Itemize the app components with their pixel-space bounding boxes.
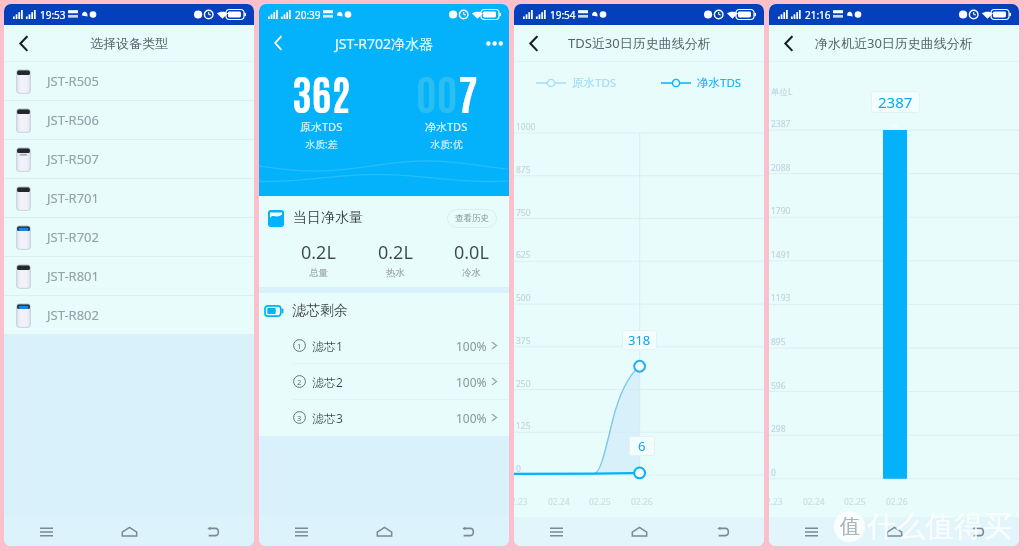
button[interactable]: 1 (259, 328, 509, 363)
staticText: 596 (771, 380, 786, 392)
button[interactable]: Home (88, 517, 171, 546)
staticText: 500 (516, 292, 531, 304)
button[interactable]: Recent apps (4, 517, 88, 546)
staticText: 125 (516, 420, 531, 432)
staticText: 02.24 (548, 496, 570, 508)
staticText: 净水机近30日历史曲线分析 (815, 34, 973, 52)
staticText: 02.23 (769, 496, 783, 508)
staticText: 318 (628, 331, 651, 349)
staticText: 250 (516, 378, 531, 390)
staticText: 625 (516, 249, 531, 261)
staticText: 1193 (771, 292, 791, 304)
staticText: 2 (297, 377, 302, 387)
staticText: 100% (456, 410, 487, 426)
button[interactable]: Home (343, 517, 426, 546)
staticText: 1790 (771, 205, 791, 217)
staticText: 原水TDS (300, 119, 343, 134)
staticText: 7 (458, 64, 478, 118)
staticText: 水质:差 (305, 137, 338, 151)
button[interactable]: 3 (259, 400, 509, 435)
button[interactable]: Back (426, 517, 509, 546)
button[interactable]: Back (681, 517, 764, 546)
staticText: 0 (771, 467, 776, 479)
button[interactable]: 查看历史 (447, 209, 497, 228)
staticText: 总量 (309, 267, 328, 279)
staticText: 100% (456, 374, 487, 390)
button[interactable]: JST-R802 (4, 296, 254, 334)
button[interactable]: Home (598, 517, 681, 546)
staticText: 热水 (386, 267, 405, 279)
button[interactable]: JST-R701 (4, 179, 254, 217)
staticText: 0.2L (378, 240, 413, 265)
button[interactable]: Back (769, 25, 807, 61)
staticText: 20:39 (295, 8, 321, 22)
staticText: 1491 (771, 249, 791, 261)
staticText: 298 (771, 423, 786, 435)
button[interactable]: JST-R507 (4, 140, 254, 178)
staticText: 滤芯3 (312, 410, 343, 426)
staticText: JST-R702净水器 (335, 34, 433, 53)
button[interactable]: Home (853, 517, 936, 546)
staticText: 选择设备类型 (90, 35, 168, 51)
button[interactable]: JST-R505 (4, 62, 254, 100)
button[interactable]: Back (259, 25, 297, 61)
staticText: 02.23 (514, 496, 528, 508)
staticText: JST-R702 (47, 228, 99, 246)
staticText: 2387 (878, 92, 913, 112)
staticText: 362 (292, 64, 351, 118)
staticText: 0.2L (301, 240, 336, 265)
staticText: JST-R801 (47, 267, 99, 285)
staticText: 02.26 (631, 496, 653, 508)
button[interactable]: Recent apps (514, 517, 598, 546)
button[interactable]: Back (936, 517, 1019, 546)
staticText: 21:16 (805, 8, 831, 22)
button[interactable]: Back (4, 25, 42, 61)
staticText: 02.25 (589, 496, 611, 508)
staticText: 查看历史 (455, 213, 489, 224)
staticText: 什么值得买 (867, 508, 1012, 545)
staticText: 02.26 (886, 496, 908, 508)
staticText: 滤芯1 (312, 338, 343, 354)
staticText: 滤芯剩余 (292, 302, 348, 320)
staticText: 3 (297, 413, 302, 423)
button[interactable]: JST-R801 (4, 257, 254, 295)
staticText: JST-R802 (47, 306, 99, 324)
button[interactable]: More options (479, 25, 509, 61)
staticText: 净水TDS (425, 119, 468, 134)
staticText: 单位L (771, 86, 793, 98)
staticText: 750 (516, 207, 531, 219)
staticText: 当日净水量 (293, 209, 363, 227)
button[interactable]: Back (171, 517, 254, 546)
button[interactable]: Back (514, 25, 552, 61)
staticText: 净水TDS (697, 75, 742, 91)
staticText: 6 (638, 437, 646, 455)
staticText: 2387 (771, 118, 791, 130)
staticText: 2088 (771, 162, 791, 174)
staticText: 0.0L (454, 240, 489, 265)
staticText: 值 (840, 514, 860, 539)
button[interactable]: JST-R702 (4, 218, 254, 256)
staticText: 1 (297, 341, 302, 351)
staticText: 875 (516, 164, 531, 176)
staticText: TDS近30日历史曲线分析 (568, 34, 711, 52)
staticText: JST-R506 (47, 111, 99, 129)
button[interactable]: Recent apps (259, 517, 343, 546)
staticText: 100% (456, 338, 487, 354)
button[interactable]: JST-R506 (4, 101, 254, 139)
staticText: 冷水 (462, 267, 481, 279)
staticText: 0 (516, 463, 521, 475)
staticText: 19:54 (550, 8, 576, 22)
staticText: 滤芯2 (312, 374, 343, 390)
staticText: 02.24 (803, 496, 825, 508)
staticText: 1000 (516, 121, 536, 133)
staticText: 00 (416, 64, 458, 118)
staticText: 19:53 (40, 8, 66, 22)
staticText: 02.25 (844, 496, 866, 508)
staticText: 水质:优 (430, 137, 463, 151)
staticText: 原水TDS (572, 75, 617, 91)
staticText: JST-R507 (47, 150, 99, 168)
staticText: JST-R505 (47, 72, 99, 90)
button[interactable]: 2 (259, 364, 509, 399)
button[interactable]: Recent apps (769, 517, 853, 546)
staticText: 375 (516, 335, 531, 347)
